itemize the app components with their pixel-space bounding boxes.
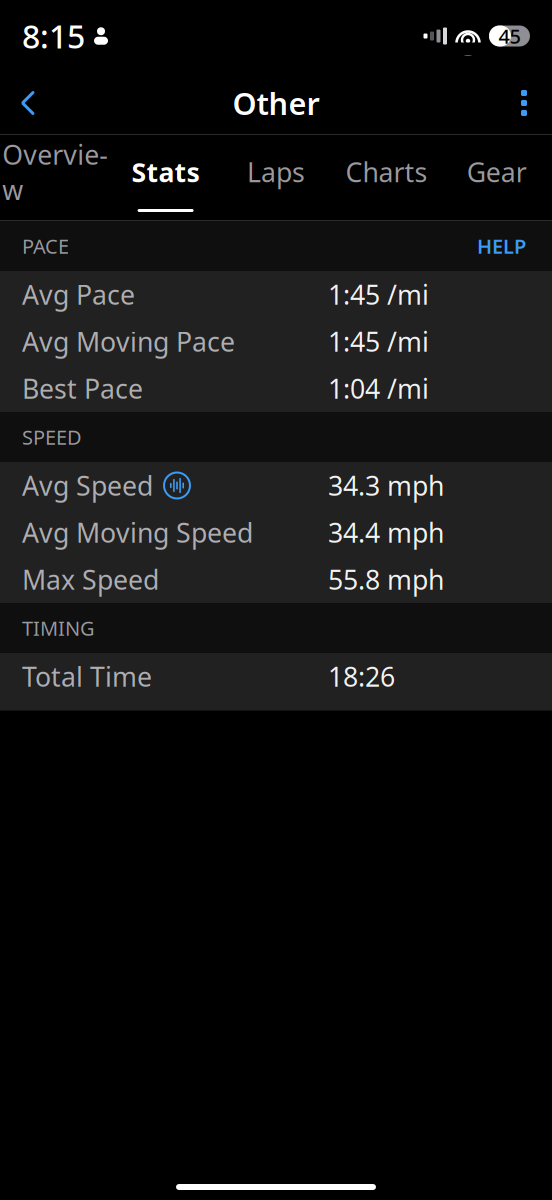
staticText: Stats — [132, 154, 200, 190]
staticText: 45 — [498, 23, 520, 49]
staticText: Laps — [247, 154, 305, 190]
staticText: Charts — [345, 154, 427, 190]
staticText: 1:45 /mi — [328, 277, 429, 312]
button[interactable]: Avg Pace — [0, 271, 552, 318]
button[interactable]: Max Speed — [0, 556, 552, 603]
staticText: Moving Time — [22, 706, 184, 741]
button[interactable]: More options — [502, 80, 546, 126]
staticText: Other — [232, 83, 319, 123]
button[interactable]: HELP — [473, 227, 530, 265]
button[interactable]: Gear — [442, 135, 552, 220]
staticText: Avg Pace — [22, 277, 135, 312]
staticText: Avg Moving Pace — [22, 324, 235, 359]
staticText: Avg Speed — [22, 468, 153, 503]
staticText: 18:26 — [328, 659, 395, 694]
staticText: PACE — [22, 233, 69, 259]
staticText: 55.8 mph — [328, 562, 444, 597]
button[interactable]: Avg Moving Speed — [0, 509, 552, 556]
button[interactable]: Stats — [110, 135, 221, 220]
staticText: 34.3 mph — [328, 468, 444, 503]
staticText: Overview — [2, 137, 108, 207]
staticText: HELP — [477, 233, 526, 259]
staticText: 1:45 /mi — [328, 324, 429, 359]
staticText: 34.4 mph — [328, 515, 444, 550]
button[interactable]: Moving Time — [0, 700, 552, 747]
staticText: Best Pace — [22, 371, 143, 406]
staticText: 8:15 — [22, 15, 85, 57]
staticText: SPEED — [22, 424, 82, 450]
staticText: TIMING — [22, 615, 95, 641]
staticText: 1:04 /mi — [328, 371, 429, 406]
staticText: Total Time — [22, 659, 152, 694]
staticText: Avg Moving Speed — [22, 515, 253, 550]
button[interactable]: Avg Moving Pace — [0, 318, 552, 365]
staticText: Max Speed — [22, 562, 159, 597]
button[interactable]: Best Pace — [0, 365, 552, 412]
staticText: Gear — [467, 154, 527, 190]
button[interactable]: Avg Speed — [0, 462, 552, 509]
button[interactable]: Back — [6, 80, 50, 126]
button[interactable]: Overview — [0, 135, 110, 220]
button[interactable]: Laps — [221, 135, 331, 220]
button[interactable]: Charts — [331, 135, 442, 220]
button[interactable]: Total Time — [0, 653, 552, 700]
staticText: 18:22 — [328, 706, 395, 741]
